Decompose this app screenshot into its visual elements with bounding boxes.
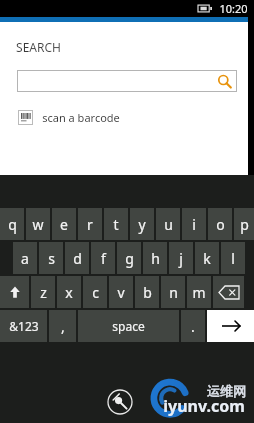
staticText: l [231, 249, 235, 268]
button[interactable]: e [52, 208, 76, 240]
button[interactable]: w [26, 208, 50, 240]
staticText: x [65, 283, 73, 302]
button[interactable]: u [156, 208, 180, 240]
button[interactable]: o [208, 208, 232, 240]
button[interactable]: a [13, 242, 37, 274]
button[interactable]: b [135, 276, 159, 308]
staticText: i [192, 215, 196, 234]
button[interactable]: h [143, 242, 167, 274]
staticText: j [179, 249, 183, 268]
button[interactable]: v [109, 276, 133, 308]
button[interactable]: s [39, 242, 63, 274]
staticText: space [112, 318, 145, 334]
button[interactable]: &123 [0, 310, 47, 342]
staticText: h [151, 249, 160, 268]
staticText: , [61, 317, 65, 336]
staticText: g [125, 249, 134, 268]
button[interactable]: space [78, 310, 179, 342]
button[interactable]: , [49, 310, 76, 342]
staticText: d [73, 249, 82, 268]
button[interactable]: f [91, 242, 115, 274]
button[interactable]: t [104, 208, 128, 240]
staticText: &123 [9, 318, 39, 334]
button[interactable]: x [57, 276, 81, 308]
staticText: SEARCH [16, 39, 61, 55]
button[interactable]: c [83, 276, 107, 308]
staticText: r [87, 215, 93, 234]
button[interactable]: Backspace [213, 276, 244, 308]
staticText: v [117, 283, 125, 302]
staticText: u [164, 215, 173, 234]
button[interactable]: k [195, 242, 219, 274]
button[interactable]: i [182, 208, 206, 240]
staticText: f [101, 249, 106, 268]
staticText: m [192, 283, 206, 302]
button[interactable]: n [161, 276, 185, 308]
button[interactable]: j [169, 242, 193, 274]
button[interactable]: l [221, 242, 245, 274]
button[interactable]: r [78, 208, 102, 240]
button[interactable] [17, 70, 237, 92]
button[interactable]: Enter [207, 310, 254, 342]
staticText: p [240, 215, 249, 234]
staticText: z [40, 283, 47, 302]
staticText: t [113, 215, 119, 234]
button[interactable]: scan a barcode [18, 106, 120, 128]
staticText: k [203, 249, 211, 268]
staticText: b [143, 283, 152, 302]
button[interactable]: g [117, 242, 141, 274]
button[interactable]: Pin [107, 389, 133, 415]
staticText: c [92, 283, 99, 302]
staticText: 运维网 [207, 383, 246, 399]
button[interactable]: d [65, 242, 89, 274]
button[interactable]: p [234, 208, 254, 240]
button[interactable]: Shift [0, 276, 29, 308]
button[interactable]: z [31, 276, 55, 308]
staticText: a [21, 249, 29, 268]
staticText: e [60, 215, 68, 234]
staticText: y [138, 215, 146, 234]
button[interactable]: q [0, 208, 24, 240]
staticText: scan a barcode [42, 110, 120, 125]
button[interactable]: m [187, 276, 211, 308]
staticText: q [8, 215, 17, 234]
staticText: w [32, 215, 44, 234]
button[interactable]: . [181, 310, 205, 342]
staticText: iyunv.com [163, 395, 245, 417]
staticText: . [191, 317, 195, 336]
staticText: n [169, 283, 178, 302]
staticText: 10:20 [219, 1, 248, 16]
staticText: s [48, 249, 55, 268]
staticText: o [216, 215, 225, 234]
button[interactable]: y [130, 208, 154, 240]
